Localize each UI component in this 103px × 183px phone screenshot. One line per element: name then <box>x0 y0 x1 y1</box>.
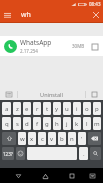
button[interactable]: Shift <box>2 132 16 145</box>
staticText: a <box>5 105 9 113</box>
button[interactable]: ' <box>78 132 86 145</box>
other: Emoji <box>18 151 23 156</box>
button[interactable]: Emoji <box>16 147 25 160</box>
staticText: z <box>16 105 19 113</box>
other: Shift <box>7 136 12 141</box>
button[interactable]: Clear search <box>89 8 103 22</box>
button[interactable]: a <box>2 102 11 115</box>
button[interactable]: i <box>73 102 81 115</box>
staticText: g <box>45 120 49 128</box>
button[interactable]: g <box>43 117 51 130</box>
staticText: 30MB <box>72 43 85 49</box>
button[interactable]: v <box>48 132 56 145</box>
button[interactable]: wh <box>14 8 89 22</box>
button[interactable]: Home <box>38 169 52 183</box>
staticText: s <box>16 120 19 128</box>
staticText: f <box>36 120 39 128</box>
button[interactable]: h <box>53 117 61 130</box>
button[interactable]: p <box>93 102 101 115</box>
button[interactable]: . <box>79 147 88 160</box>
button[interactable]: y <box>53 102 61 115</box>
staticText: n <box>70 135 74 143</box>
button[interactable]: Switch keyboard <box>0 88 17 100</box>
button[interactable]: o <box>83 102 91 115</box>
staticText: r <box>36 105 39 113</box>
button[interactable]: x <box>28 132 36 145</box>
button[interactable]: n <box>68 132 76 145</box>
staticText: v <box>50 135 54 143</box>
button[interactable]: Select WhatsApp <box>90 42 99 51</box>
button[interactable]: Backspace <box>88 132 101 145</box>
staticText: y <box>55 105 59 113</box>
button[interactable]: f <box>33 117 41 130</box>
staticText: x <box>30 135 34 143</box>
staticText: 08:43 <box>89 1 101 7</box>
button[interactable]: m <box>93 117 101 130</box>
button[interactable]: d <box>23 117 31 130</box>
staticText: ' <box>81 135 83 143</box>
staticText: . <box>83 150 85 158</box>
other: Backspace <box>91 136 98 141</box>
staticText: w <box>20 135 25 143</box>
button[interactable]: Search <box>90 147 101 160</box>
staticText: i <box>76 105 78 113</box>
staticText: e <box>25 105 29 113</box>
staticText: j <box>66 120 68 128</box>
button[interactable]: t <box>43 102 51 115</box>
staticText: u <box>65 105 69 113</box>
button[interactable]: b <box>58 132 66 145</box>
button[interactable]: e <box>23 102 31 115</box>
other: Search <box>93 151 98 156</box>
staticText: l <box>86 120 88 128</box>
staticText: 2.17.254 <box>20 48 38 54</box>
staticText: q <box>5 120 9 128</box>
staticText: b <box>60 135 64 143</box>
staticText: Uninstall <box>40 91 63 98</box>
staticText: m <box>94 120 100 128</box>
button[interactable]: r <box>33 102 41 115</box>
staticText: p <box>95 105 99 113</box>
staticText: wh <box>21 10 31 20</box>
staticText: WhatsApp <box>20 38 52 47</box>
button[interactable]: Space <box>27 147 77 160</box>
button[interactable]: l <box>83 117 91 130</box>
staticText: k <box>75 120 79 128</box>
button[interactable]: 123? <box>2 147 14 160</box>
button[interactable]: Hide keyboard <box>86 170 98 182</box>
button[interactable]: z <box>13 102 21 115</box>
button[interactable]: w <box>18 132 26 145</box>
staticText: t <box>46 105 49 113</box>
button[interactable]: k <box>73 117 81 130</box>
button[interactable]: s <box>13 117 21 130</box>
button[interactable]: q <box>2 117 11 130</box>
button[interactable]: j <box>63 117 71 130</box>
staticText: h <box>55 120 59 128</box>
button[interactable]: More suggestions <box>86 88 103 100</box>
staticText: c <box>41 135 44 143</box>
button[interactable]: c <box>38 132 46 145</box>
button[interactable]: Uninstall <box>18 88 85 100</box>
button[interactable]: WhatsApp <box>0 36 103 56</box>
button[interactable]: u <box>63 102 71 115</box>
staticText: 123? <box>3 151 13 157</box>
staticText: d <box>25 120 29 128</box>
button[interactable]: Back <box>11 169 25 183</box>
button[interactable]: Recent apps <box>65 169 79 183</box>
button[interactable]: Open navigation drawer <box>0 8 14 22</box>
staticText: o <box>85 105 89 113</box>
